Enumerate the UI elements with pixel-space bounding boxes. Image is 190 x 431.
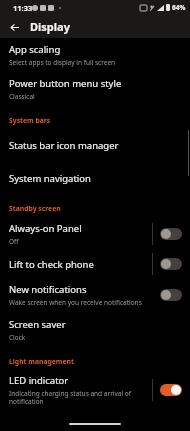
button[interactable]: Status bar icon manager	[0, 129, 190, 162]
button[interactable]: Lift to check phone	[0, 251, 190, 277]
button[interactable]: LED indicator	[160, 384, 182, 396]
button[interactable]: Always-on Panel	[160, 228, 182, 240]
staticText: Clock	[9, 333, 26, 342]
staticText: Screen saver	[9, 318, 66, 331]
staticText: Status bar icon manager	[9, 139, 119, 152]
staticText: 64%	[172, 3, 186, 12]
button[interactable]: LED indicator	[0, 370, 190, 410]
staticText: New notifications	[9, 283, 87, 296]
staticText: System bars	[9, 116, 51, 125]
staticText: System navigation	[9, 172, 91, 185]
button[interactable]: App scaling	[0, 38, 190, 72]
button[interactable]: New notifications	[160, 289, 182, 301]
staticText: Always-on Panel	[9, 222, 82, 235]
staticText: Lift to check phone	[9, 258, 94, 271]
button[interactable]: New notifications	[0, 277, 190, 313]
staticText: App scaling	[9, 43, 61, 56]
staticText: LED indicator	[9, 374, 69, 387]
staticText: Light management	[9, 357, 74, 366]
staticText: Off	[9, 237, 19, 246]
button[interactable]: System navigation	[0, 162, 190, 194]
button[interactable]: Power button menu style	[0, 72, 190, 106]
button[interactable]: Lift to check phone	[160, 258, 182, 270]
staticText: Wake screen when you receive notificatio…	[9, 298, 142, 307]
staticText: Classical	[9, 92, 35, 101]
staticText: Display	[30, 19, 70, 34]
staticText: 11:33	[13, 3, 33, 13]
button[interactable]: Back	[4, 17, 24, 37]
staticText: Power button menu style	[9, 77, 122, 90]
staticText: Select apps to display in full screen	[9, 58, 116, 67]
button[interactable]: Always-on Panel	[0, 217, 190, 251]
staticText: Standby screen	[9, 204, 61, 213]
staticText: Indicating charging status and arrival o…	[9, 389, 148, 406]
button[interactable]: Screen saver	[0, 313, 190, 347]
